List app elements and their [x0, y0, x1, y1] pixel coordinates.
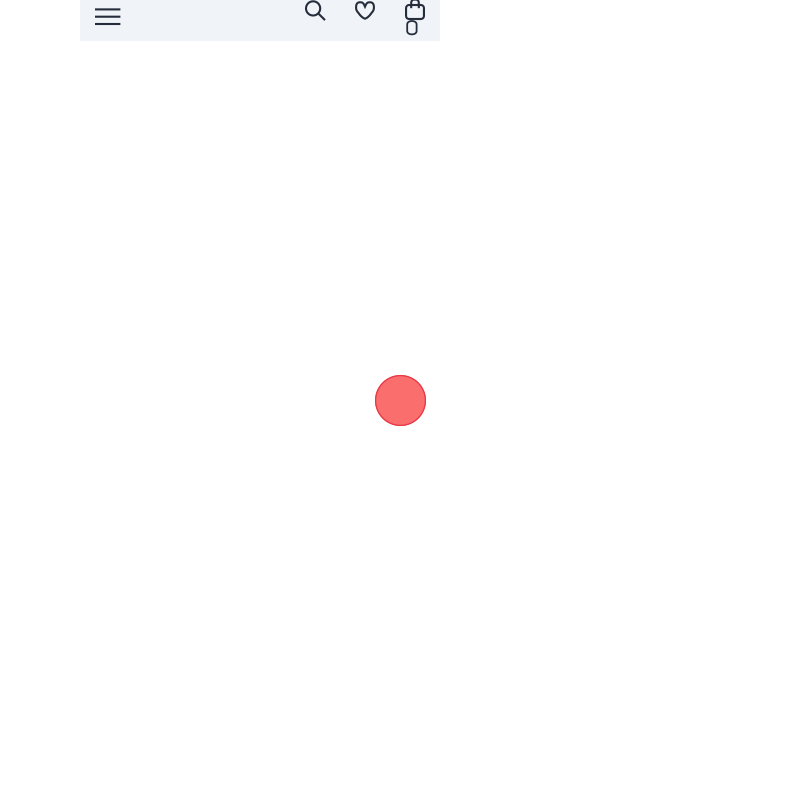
button[interactable]: Search	[295, 0, 335, 41]
button[interactable]: Cart, 0 items	[395, 0, 435, 41]
button[interactable]: Menu	[85, 0, 129, 41]
button[interactable]: Wishlist	[344, 0, 384, 41]
